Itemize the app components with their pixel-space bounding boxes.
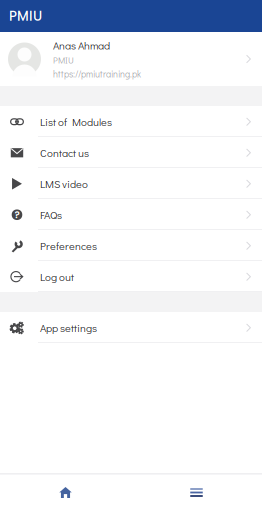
button[interactable]: Log out [0,261,262,292]
staticText: Log out [40,270,74,284]
staticText: PMIU [53,54,74,66]
staticText: List of Modules [40,115,112,129]
staticText: Preferences [40,239,97,253]
button[interactable]: ? [0,199,262,230]
button[interactable]: Home [0,473,131,512]
button[interactable]: Anas Ahmad [0,32,262,86]
button[interactable]: Preferences [0,230,262,261]
staticText: Anas Ahmad [53,38,110,52]
button[interactable]: List of Modules [0,106,262,137]
staticText: PMIU [9,7,42,25]
staticText: FAQs [40,208,62,222]
button[interactable]: App settings [0,312,262,343]
staticText: https://pmiutraining.pk [53,68,141,80]
button[interactable]: Contact us [0,137,262,168]
button[interactable]: Menu [131,473,262,512]
staticText: ? [14,208,19,222]
staticText: Contact us [40,146,89,160]
staticText: App settings [40,321,97,335]
staticText: LMS video [40,177,88,191]
button[interactable]: LMS video [0,168,262,199]
